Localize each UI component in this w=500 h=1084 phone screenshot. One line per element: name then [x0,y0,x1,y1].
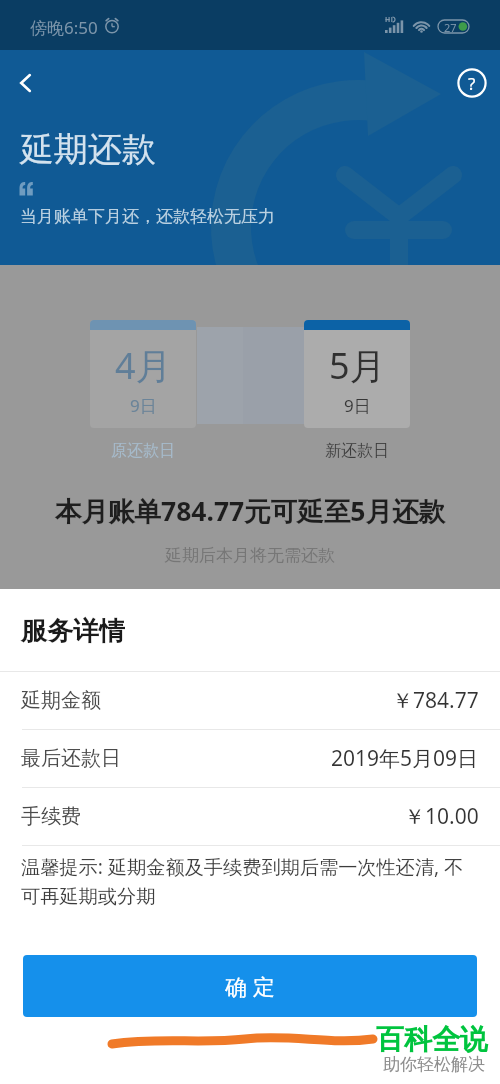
button[interactable]: 5月 [304,320,410,428]
staticText: ￥10.00 [404,802,479,831]
button[interactable]: 手续费 [0,788,500,845]
staticText: 延期还款 [20,128,156,171]
staticText: 确 定 [225,971,275,1001]
staticText: 手续费 [21,804,81,829]
staticText: 延期金额 [21,688,101,713]
staticText: 延期后本月将无需还款 [165,545,335,566]
staticText: 4月 [115,341,172,390]
staticText: 5月 [329,341,386,390]
staticText: 27 [444,20,457,33]
staticText: 2019年5月09日 [331,744,479,773]
staticText: 服务详情 [21,615,125,648]
button[interactable]: 4月 [90,320,196,428]
button[interactable]: Back [0,57,52,109]
staticText: 9日 [130,394,157,417]
button[interactable]: 确 定 [23,955,477,1017]
staticText: ? [468,72,476,95]
staticText: 傍晚6:50 [30,16,98,39]
staticText: 原还款日 [111,441,175,461]
staticText: 本月账单784.77元可延至5月还款 [55,493,445,529]
staticText: 百科全说 [376,1022,488,1057]
staticText: 当月账单下月还，还款轻松无压力 [20,206,275,227]
staticText: 温馨提示: 延期金额及手续费到期后需一次性还清, 不 可再延期或分期 [21,853,464,908]
staticText: ￥784.77 [392,686,479,715]
button[interactable]: Help [444,55,500,111]
button[interactable]: 延期金额 [0,672,500,729]
staticText: 新还款日 [325,441,389,461]
staticText: 最后还款日 [21,746,121,771]
button[interactable]: 最后还款日 [0,730,500,787]
staticText: 助你轻松解决 [383,1054,485,1075]
staticText: 9日 [344,394,371,417]
